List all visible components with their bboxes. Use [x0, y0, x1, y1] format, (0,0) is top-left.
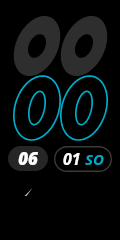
staticText: SO	[85, 149, 104, 169]
button[interactable]: Hours 00	[0, 8, 120, 68]
other: Hours 00	[0, 8, 120, 68]
staticText: 06	[18, 147, 38, 170]
button[interactable]: 06	[8, 146, 48, 171]
staticText: 01	[63, 148, 81, 170]
other: Minutes 00	[0, 76, 120, 140]
button[interactable]: Minutes 00	[0, 76, 120, 140]
button[interactable]: 01	[54, 146, 112, 172]
